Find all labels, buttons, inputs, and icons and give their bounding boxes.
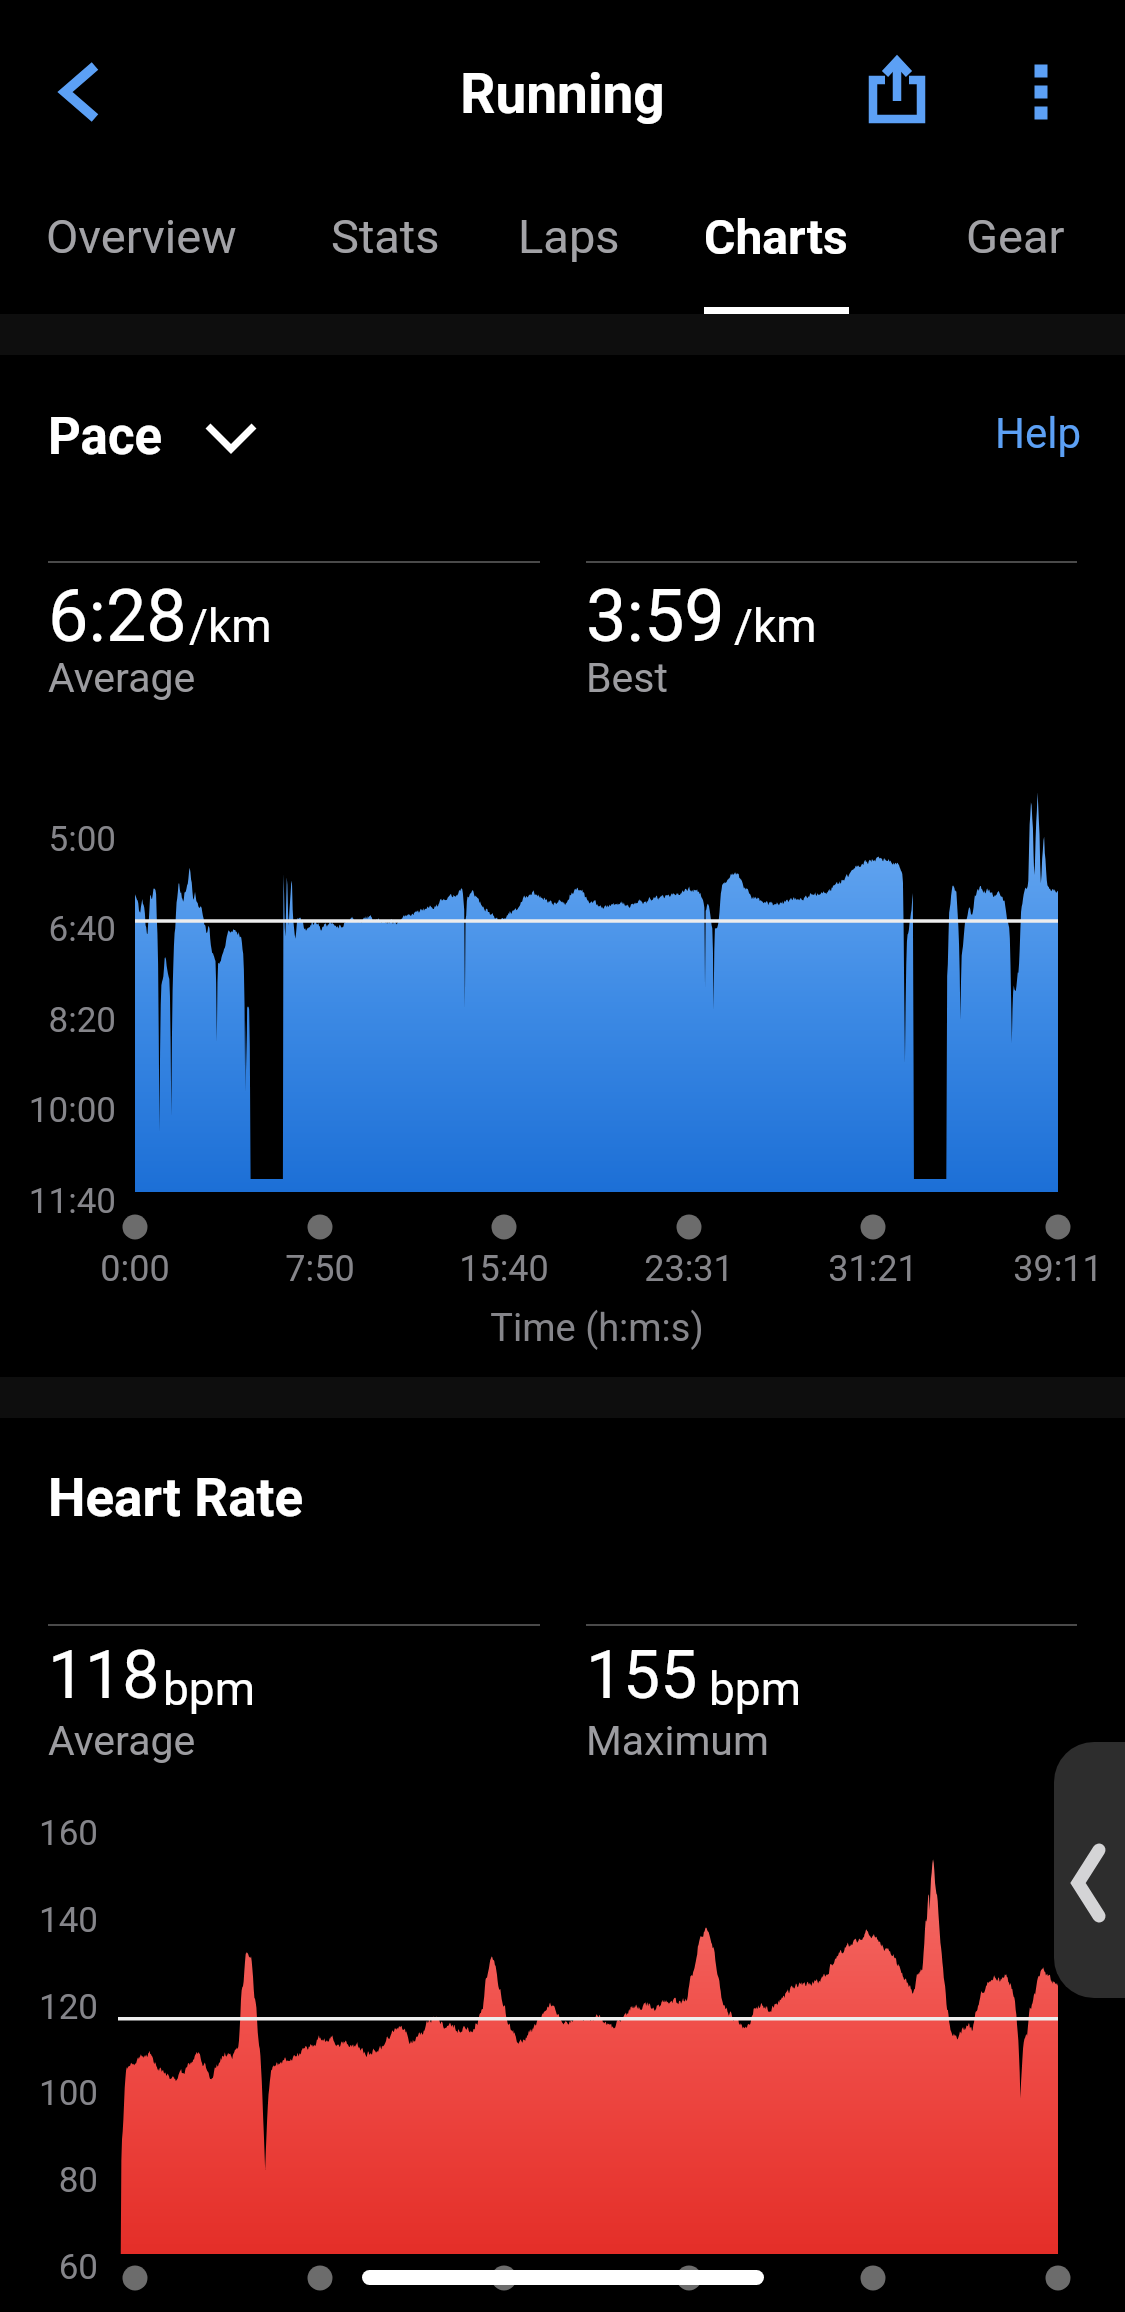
button[interactable]: Back <box>22 35 138 151</box>
staticText: 80 <box>0 2160 98 2201</box>
staticText: 10:00 <box>0 1090 116 1131</box>
button[interactable]: Overview <box>22 176 261 314</box>
staticText: 120 <box>0 1987 98 2028</box>
staticText: /km <box>734 599 817 653</box>
button[interactable]: Share <box>838 35 954 151</box>
staticText: 155 <box>586 1637 698 1714</box>
staticText: 0:00 <box>15 1248 255 1290</box>
staticText: 11:40 <box>0 1181 116 1222</box>
button[interactable]: More options <box>985 35 1101 151</box>
staticText: Maximum <box>586 1717 769 1765</box>
staticText: 3:59 <box>586 574 725 658</box>
button[interactable]: Gear <box>941 176 1090 314</box>
staticText: Best <box>586 654 668 702</box>
staticText: 39:11 <box>938 1248 1125 1290</box>
staticText: 140 <box>0 1900 98 1941</box>
staticText: bpm <box>709 1662 801 1716</box>
staticText: 6:28 <box>48 574 187 658</box>
staticText: 15:40 <box>384 1248 624 1290</box>
button[interactable]: Stats <box>307 176 463 314</box>
staticText: Pace <box>48 407 163 467</box>
staticText: Stats <box>331 209 440 264</box>
staticText: Time (h:m:s) <box>297 1306 897 1351</box>
button[interactable]: Charts <box>680 176 871 314</box>
staticText: Running <box>0 62 1125 126</box>
staticText: 31:21 <box>753 1248 993 1290</box>
staticText: 7:50 <box>200 1248 440 1290</box>
staticText: Heart Rate <box>48 1467 304 1529</box>
staticText: Overview <box>46 209 237 264</box>
staticText: 100 <box>0 2073 98 2114</box>
staticText: bpm <box>163 1662 255 1716</box>
staticText: Gear <box>966 209 1065 264</box>
staticText: Average <box>48 1717 196 1765</box>
staticText: 160 <box>0 1813 98 1854</box>
button[interactable]: Pace <box>48 407 255 467</box>
staticText: 118 <box>48 1637 160 1714</box>
staticText: /km <box>189 599 272 653</box>
staticText: 8:20 <box>0 1000 116 1041</box>
staticText: Help <box>995 409 1082 458</box>
staticText: 5:00 <box>0 819 116 860</box>
staticText: Charts <box>704 209 848 265</box>
button[interactable]: Laps <box>494 176 643 314</box>
staticText: 6:40 <box>0 909 116 950</box>
staticText: 23:31 <box>569 1248 809 1290</box>
button[interactable]: Help <box>995 409 1082 458</box>
staticText: Laps <box>518 209 620 264</box>
staticText: Average <box>48 654 196 702</box>
staticText: 60 <box>0 2247 98 2288</box>
button[interactable]: Open side panel <box>1054 1742 1125 1998</box>
